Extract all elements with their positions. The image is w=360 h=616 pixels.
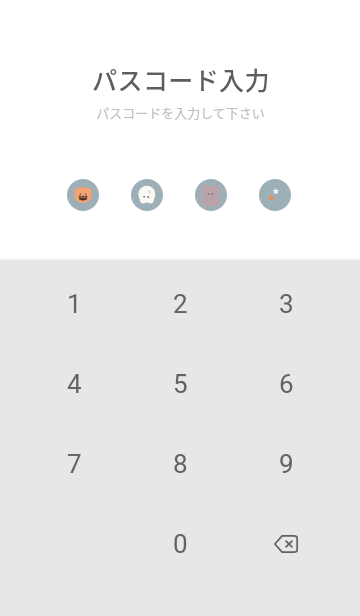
- other: Passcode character 2: [131, 179, 163, 211]
- staticText: パスコード入力: [92, 61, 270, 97]
- staticText: パスコードを入力して下さい: [96, 103, 265, 122]
- button[interactable]: 1: [21, 264, 127, 344]
- staticText: 7: [67, 449, 82, 479]
- staticText: 3: [279, 289, 294, 319]
- other: Passcode character 3: [195, 179, 227, 211]
- other: Passcode character 4: [259, 179, 291, 211]
- staticText: 9: [279, 449, 294, 479]
- other: Passcode character 1: [67, 179, 99, 211]
- button[interactable]: Backspace: [233, 504, 339, 584]
- staticText: 1: [67, 289, 82, 319]
- staticText: 0: [173, 529, 188, 559]
- staticText: 4: [67, 369, 82, 399]
- button[interactable]: 9: [233, 424, 339, 504]
- button[interactable]: 3: [233, 264, 339, 344]
- staticText: 5: [173, 369, 188, 399]
- button[interactable]: 6: [233, 344, 339, 424]
- button[interactable]: 5: [127, 344, 233, 424]
- staticText: 2: [173, 289, 188, 319]
- button[interactable]: 2: [127, 264, 233, 344]
- button[interactable]: 8: [127, 424, 233, 504]
- button[interactable]: 0: [127, 504, 233, 584]
- staticText: 6: [279, 369, 294, 399]
- button[interactable]: 4: [21, 344, 127, 424]
- staticText: 8: [173, 449, 188, 479]
- button[interactable]: 7: [21, 424, 127, 504]
